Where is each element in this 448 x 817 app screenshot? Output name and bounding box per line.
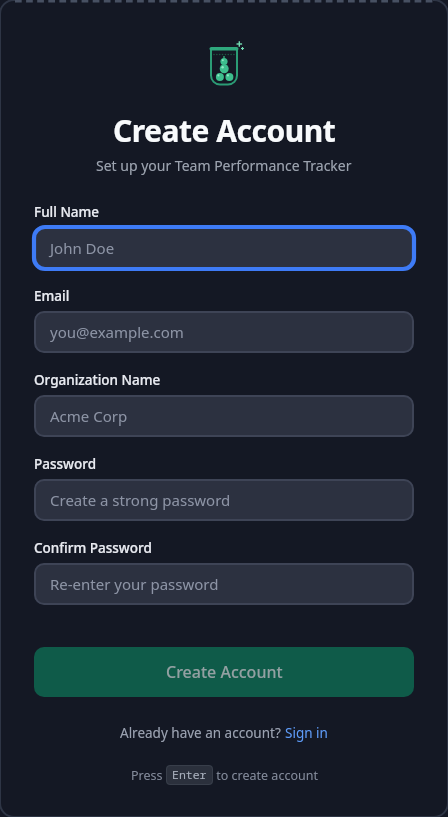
staticText: you@example.com	[50, 322, 184, 342]
staticText: Email	[34, 287, 70, 305]
staticText: Press	[131, 767, 166, 784]
button[interactable]: Create a strong password	[34, 479, 414, 521]
button[interactable]: Sign in	[285, 724, 328, 742]
button[interactable]: Create Account	[34, 647, 414, 697]
staticText: Create a strong password	[50, 490, 231, 510]
button[interactable]: Re-enter your password	[34, 563, 414, 605]
staticText: to create account	[213, 767, 318, 784]
staticText: Enter	[172, 767, 207, 783]
staticText: Set up your Team Performance Tracker	[96, 156, 352, 175]
staticText: Acme Corp	[50, 406, 128, 426]
staticText: Already have an account?	[120, 724, 285, 742]
staticText: Re-enter your password	[50, 574, 219, 594]
staticText: John Doe	[50, 238, 115, 258]
staticText: Confirm Password	[34, 539, 152, 557]
button[interactable]: Acme Corp	[34, 395, 414, 437]
staticText: Create Account	[113, 110, 336, 151]
button[interactable]: you@example.com	[34, 311, 414, 353]
staticText: Password	[34, 455, 97, 473]
staticText: Organization Name	[34, 371, 161, 389]
button[interactable]: John Doe	[34, 227, 414, 269]
staticText: Sign in	[285, 724, 328, 742]
staticText: Full Name	[34, 203, 100, 221]
staticText: Create Account	[166, 661, 283, 683]
